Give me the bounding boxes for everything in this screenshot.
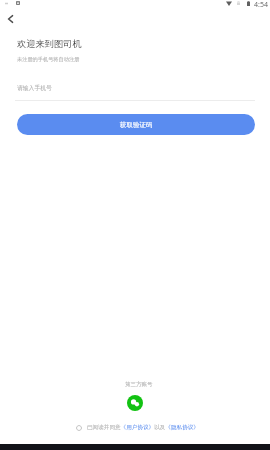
staticText: 获取验证码: [120, 121, 153, 129]
staticText: 第三方账号: [125, 381, 153, 388]
button[interactable]: 已阅读并同意《用户协议》以及《隐私协议》: [87, 424, 199, 431]
staticText: 请输入手机号: [17, 84, 52, 91]
staticText: 未注册的手机号将自动注册: [17, 56, 80, 63]
button[interactable]: Agree to terms checkbox: [76, 425, 82, 431]
staticText: 欢迎来到图司机: [17, 38, 82, 50]
button[interactable]: WeChat login: [127, 395, 143, 411]
button[interactable]: 获取验证码: [17, 114, 255, 135]
staticText: 4:54: [254, 0, 268, 10]
button[interactable]: Back: [2, 10, 19, 27]
